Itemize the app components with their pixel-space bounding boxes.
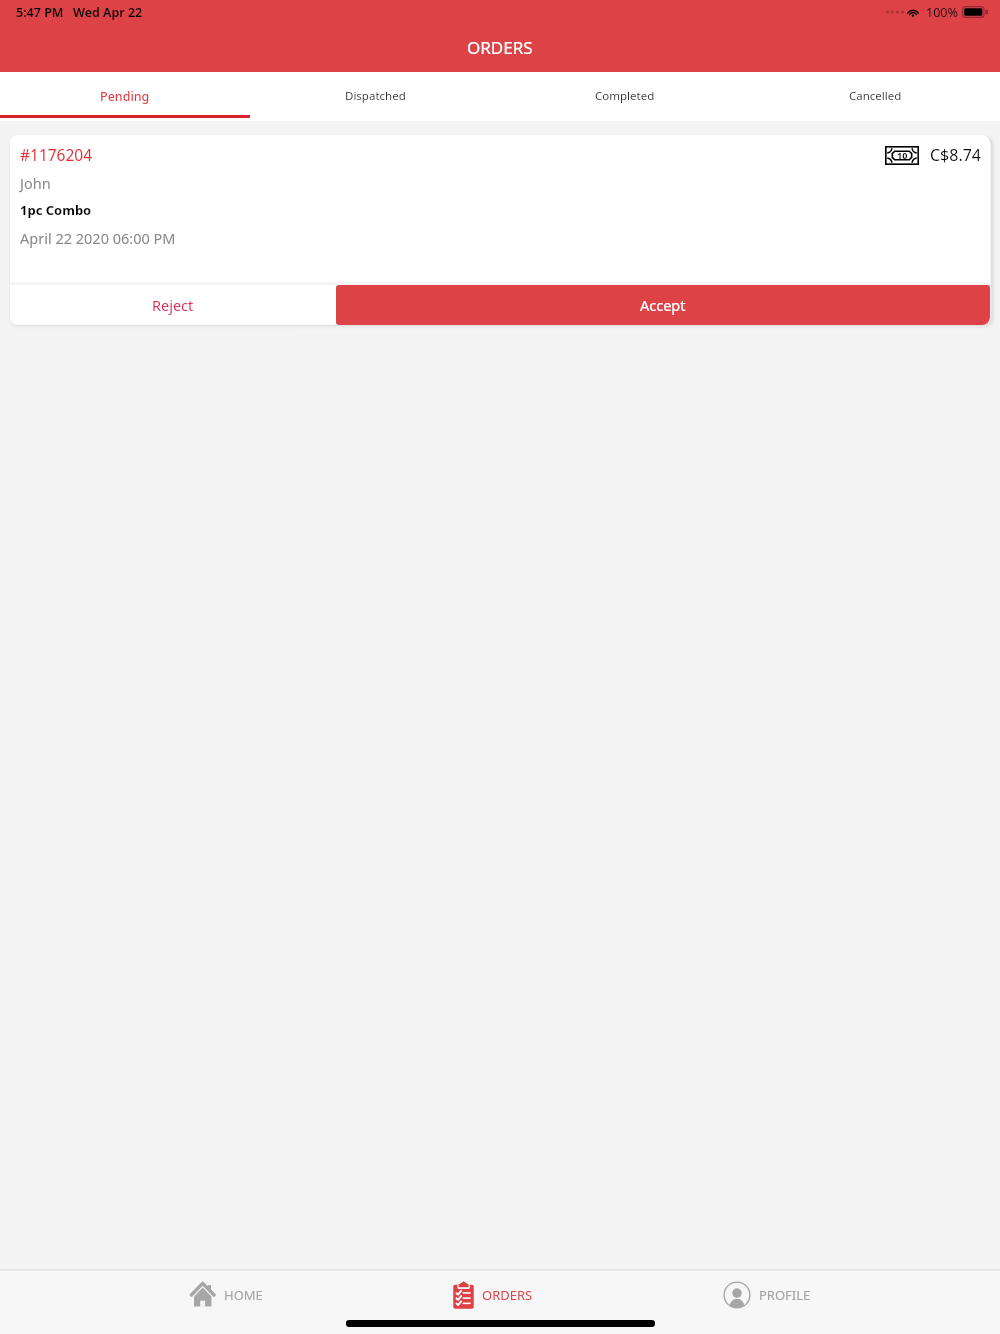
staticText: PROFILE bbox=[759, 1286, 811, 1304]
button[interactable]: #1176204 bbox=[10, 135, 990, 325]
staticText: Wed Apr 22 bbox=[73, 4, 143, 21]
staticText: ORDERS bbox=[482, 1286, 533, 1304]
staticText: 100% bbox=[926, 4, 958, 21]
staticText: Accept bbox=[640, 295, 686, 315]
staticText: #1176204 bbox=[20, 144, 93, 165]
staticText: Reject bbox=[152, 295, 194, 315]
button[interactable]: Dispatched bbox=[250, 72, 500, 121]
button[interactable]: Orders bbox=[452, 1271, 533, 1319]
staticText: 10 bbox=[897, 149, 908, 161]
button[interactable]: Home bbox=[189, 1271, 263, 1319]
staticText: C$8.74 bbox=[930, 144, 982, 166]
button[interactable]: Cancelled bbox=[750, 72, 1000, 121]
button[interactable]: Reject bbox=[10, 285, 336, 325]
staticText: Cancelled bbox=[849, 88, 902, 104]
staticText: 5:47 PM bbox=[16, 4, 64, 21]
staticText: ORDERS bbox=[467, 36, 533, 59]
staticText: Dispatched bbox=[345, 88, 406, 104]
staticText: Completed bbox=[595, 88, 655, 104]
button[interactable]: Pending bbox=[0, 72, 250, 121]
staticText: Pending bbox=[100, 88, 150, 105]
staticText: HOME bbox=[224, 1286, 263, 1304]
staticText: April 22 2020 06:00 PM bbox=[20, 228, 176, 248]
staticText: 1pc Combo bbox=[20, 201, 92, 219]
staticText: John bbox=[20, 173, 51, 193]
button[interactable]: Profile bbox=[722, 1271, 811, 1319]
button[interactable]: Completed bbox=[500, 72, 750, 121]
button[interactable]: Accept bbox=[336, 285, 990, 325]
